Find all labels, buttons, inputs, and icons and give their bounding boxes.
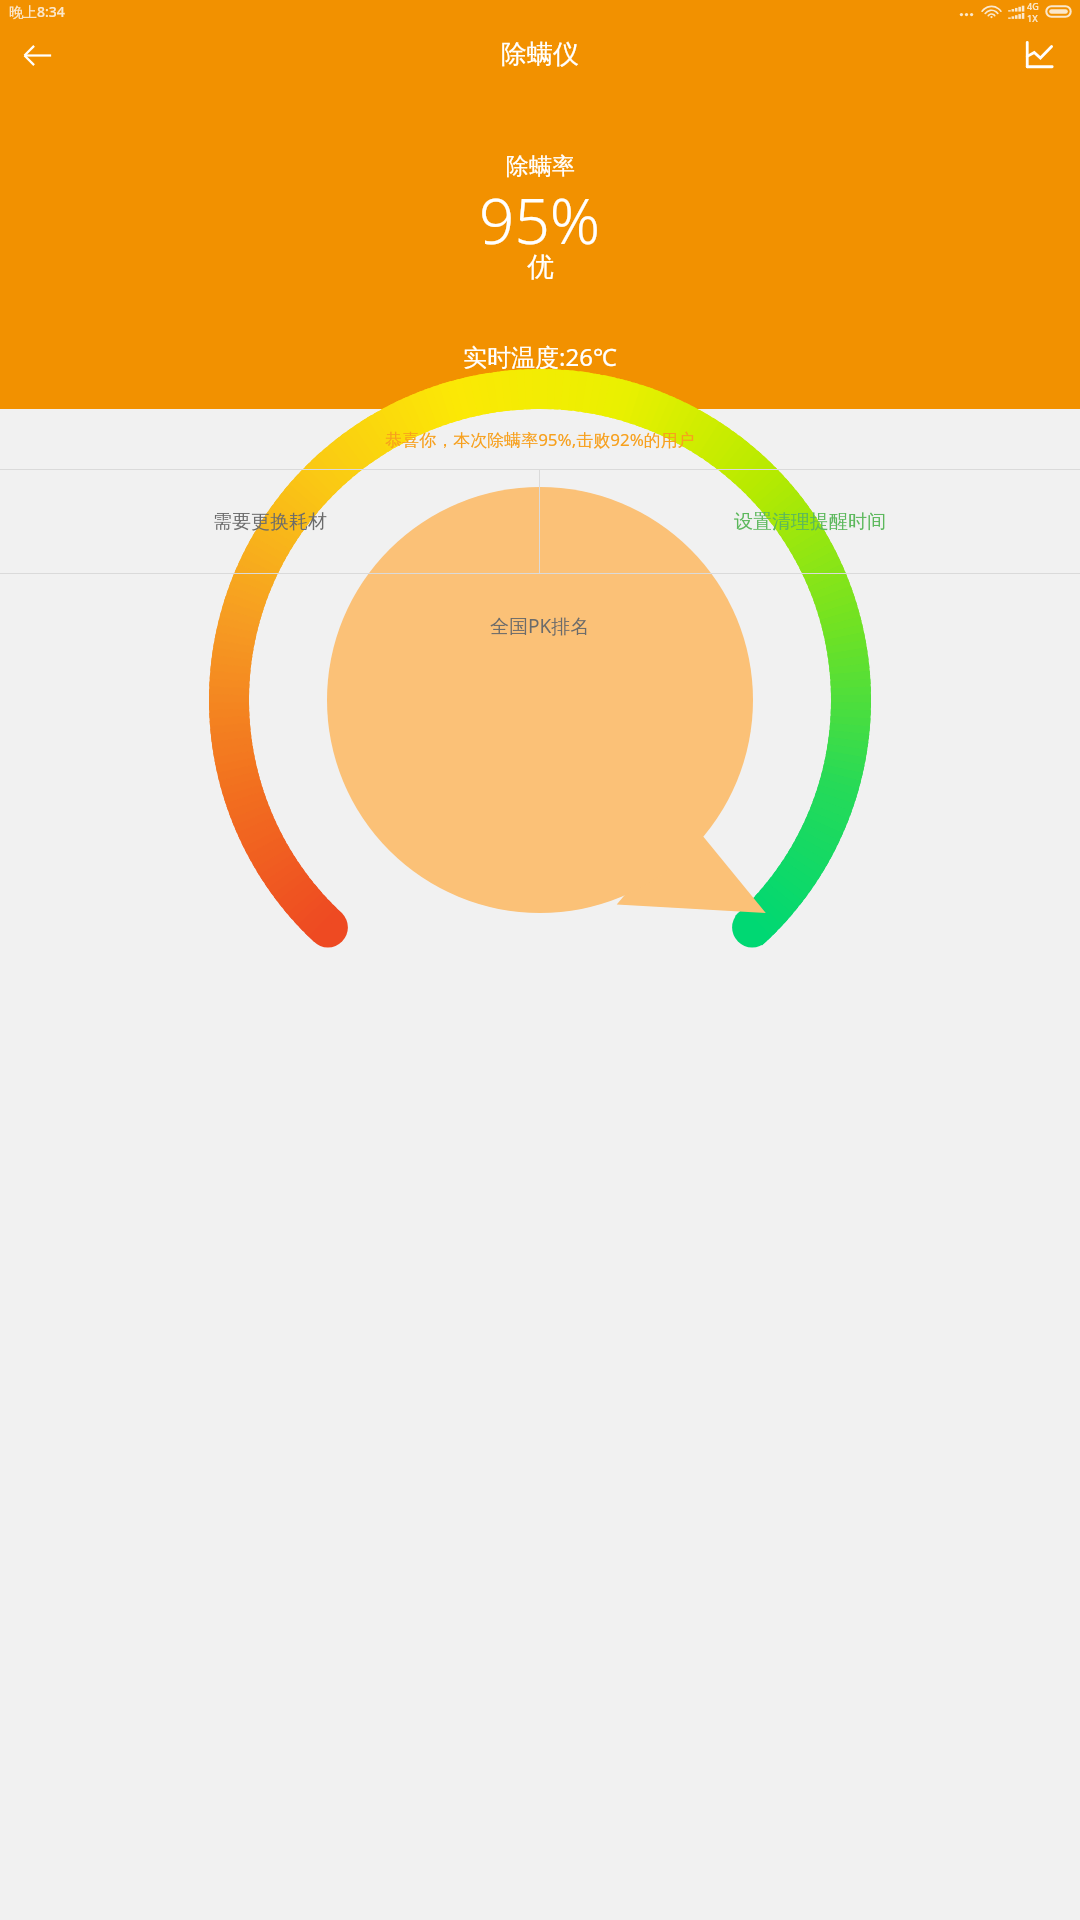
staticText: 设置清理提醒时间 bbox=[734, 510, 886, 534]
button[interactable]: Back bbox=[8, 26, 66, 84]
staticText: 优 bbox=[527, 250, 554, 284]
staticText: 1X bbox=[1027, 12, 1038, 23]
staticText: 4G bbox=[1027, 0, 1039, 12]
staticText: 全国PK排名 bbox=[490, 613, 590, 639]
staticText: 恭喜你，本次除螨率95%,击败92%的用户 bbox=[385, 428, 695, 451]
staticText: 晚上8:34 bbox=[9, 2, 65, 21]
button[interactable]: 全国PK排名 bbox=[0, 574, 1080, 677]
button[interactable]: 设置清理提醒时间 bbox=[540, 470, 1080, 573]
staticText: 95% bbox=[479, 178, 601, 262]
button[interactable]: 需要更换耗材 bbox=[0, 470, 539, 573]
staticText: 需要更换耗材 bbox=[213, 510, 327, 534]
staticText: 除螨仪 bbox=[501, 38, 579, 71]
staticText: 除螨率 bbox=[506, 152, 575, 181]
staticText: 实时温度:26℃ bbox=[463, 340, 617, 373]
button[interactable]: Chart bbox=[1010, 26, 1068, 84]
